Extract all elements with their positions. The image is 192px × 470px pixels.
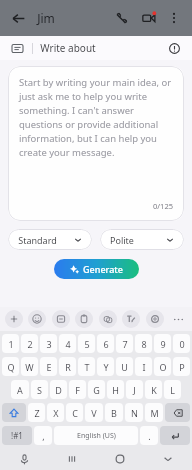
button[interactable]: W: [21, 357, 38, 376]
button[interactable]: 7: [116, 334, 133, 353]
staticText: J: [133, 384, 136, 396]
staticText: Polite: [110, 234, 134, 246]
button[interactable]: Polite: [100, 229, 184, 250]
button[interactable]: Voice input: [0, 448, 48, 470]
staticText: B: [111, 407, 117, 419]
button[interactable]: Keyboard: [8, 39, 26, 57]
button[interactable]: Assistant: [5, 310, 23, 328]
button[interactable]: ,: [34, 426, 52, 445]
staticText: Generate: [83, 263, 123, 275]
button[interactable]: Translate: [99, 310, 117, 328]
button[interactable]: 4: [59, 334, 76, 353]
staticText: Y: [103, 361, 109, 373]
staticText: X: [53, 407, 59, 419]
button[interactable]: English (US): [54, 426, 138, 445]
button[interactable]: A: [11, 380, 29, 399]
button[interactable]: Recent apps: [48, 448, 96, 470]
staticText: U: [121, 361, 128, 373]
button[interactable]: Settings: [146, 310, 164, 328]
staticText: 5: [84, 338, 90, 350]
button[interactable]: Y: [97, 357, 114, 376]
staticText: O: [159, 361, 167, 373]
button[interactable]: Z: [28, 403, 45, 422]
button[interactable]: D: [50, 380, 67, 399]
button[interactable]: Generate: [54, 259, 139, 279]
staticText: S: [37, 384, 42, 396]
staticText: F: [75, 384, 80, 396]
staticText: ,: [42, 430, 45, 442]
button[interactable]: S: [31, 380, 48, 399]
button[interactable]: R: [59, 357, 76, 376]
button[interactable]: M: [145, 403, 163, 422]
button[interactable]: E: [40, 357, 57, 376]
button[interactable]: .: [140, 426, 158, 445]
staticText: 6: [103, 338, 109, 350]
button[interactable]: T: [78, 357, 95, 376]
button[interactable]: Home: [96, 448, 144, 470]
button[interactable]: 2: [21, 334, 38, 353]
button[interactable]: 5: [78, 334, 95, 353]
staticText: E: [46, 361, 52, 373]
staticText: Jim: [37, 10, 55, 26]
button[interactable]: Handwriting: [122, 310, 140, 328]
button[interactable]: !#1: [2, 426, 32, 445]
button[interactable]: Clipboard: [75, 310, 93, 328]
button[interactable]: I: [135, 357, 152, 376]
staticText: T: [84, 361, 90, 373]
button[interactable]: X: [47, 403, 64, 422]
staticText: K: [151, 384, 157, 396]
button[interactable]: J: [126, 380, 143, 399]
button[interactable]: More: [169, 310, 187, 328]
staticText: G: [93, 384, 100, 396]
staticText: I: [142, 361, 146, 373]
staticText: Start by writing your main idea, or just…: [19, 76, 173, 159]
button[interactable]: Hide keyboard: [144, 448, 192, 470]
staticText: 2: [27, 338, 33, 350]
button[interactable]: L: [164, 380, 181, 399]
button[interactable]: O: [154, 357, 171, 376]
button[interactable]: Video call: [137, 6, 161, 30]
staticText: L: [170, 384, 175, 396]
button[interactable]: G: [88, 380, 105, 399]
button[interactable]: More options: [163, 7, 185, 29]
staticText: 9: [160, 338, 166, 350]
button[interactable]: Q: [2, 357, 19, 376]
button[interactable]: U: [116, 357, 133, 376]
button[interactable]: P: [173, 357, 190, 376]
staticText: 3: [46, 338, 52, 350]
staticText: D: [55, 384, 62, 396]
button[interactable]: Enter: [160, 426, 190, 445]
staticText: Q: [7, 361, 15, 373]
staticText: Z: [34, 407, 40, 419]
button[interactable]: 9: [154, 334, 171, 353]
button[interactable]: Emoji: [28, 310, 46, 328]
button[interactable]: V: [85, 403, 103, 422]
button[interactable]: Back: [7, 7, 29, 29]
staticText: A: [17, 384, 23, 396]
button[interactable]: B: [105, 403, 123, 422]
button[interactable]: 3: [40, 334, 57, 353]
button[interactable]: N: [125, 403, 143, 422]
button[interactable]: 0: [173, 334, 190, 353]
staticText: W: [25, 361, 34, 373]
staticText: N: [131, 407, 138, 419]
button[interactable]: Start by writing your main idea, or just…: [8, 66, 184, 221]
staticText: !#1: [11, 430, 23, 441]
button[interactable]: 1: [2, 334, 19, 353]
button[interactable]: Call: [109, 6, 133, 30]
button[interactable]: Standard: [8, 229, 92, 250]
button[interactable]: Shift: [2, 403, 26, 422]
button[interactable]: Backspace: [165, 403, 190, 422]
button[interactable]: Stickers: [52, 310, 70, 328]
button[interactable]: 8: [135, 334, 152, 353]
button[interactable]: H: [107, 380, 124, 399]
staticText: English (US): [77, 431, 116, 441]
staticText: 4: [65, 338, 71, 350]
staticText: 7: [122, 338, 128, 350]
staticText: 1: [8, 338, 14, 350]
button[interactable]: Information: [164, 38, 184, 58]
button[interactable]: 6: [97, 334, 114, 353]
button[interactable]: C: [66, 403, 83, 422]
button[interactable]: F: [69, 380, 86, 399]
button[interactable]: K: [145, 380, 162, 399]
